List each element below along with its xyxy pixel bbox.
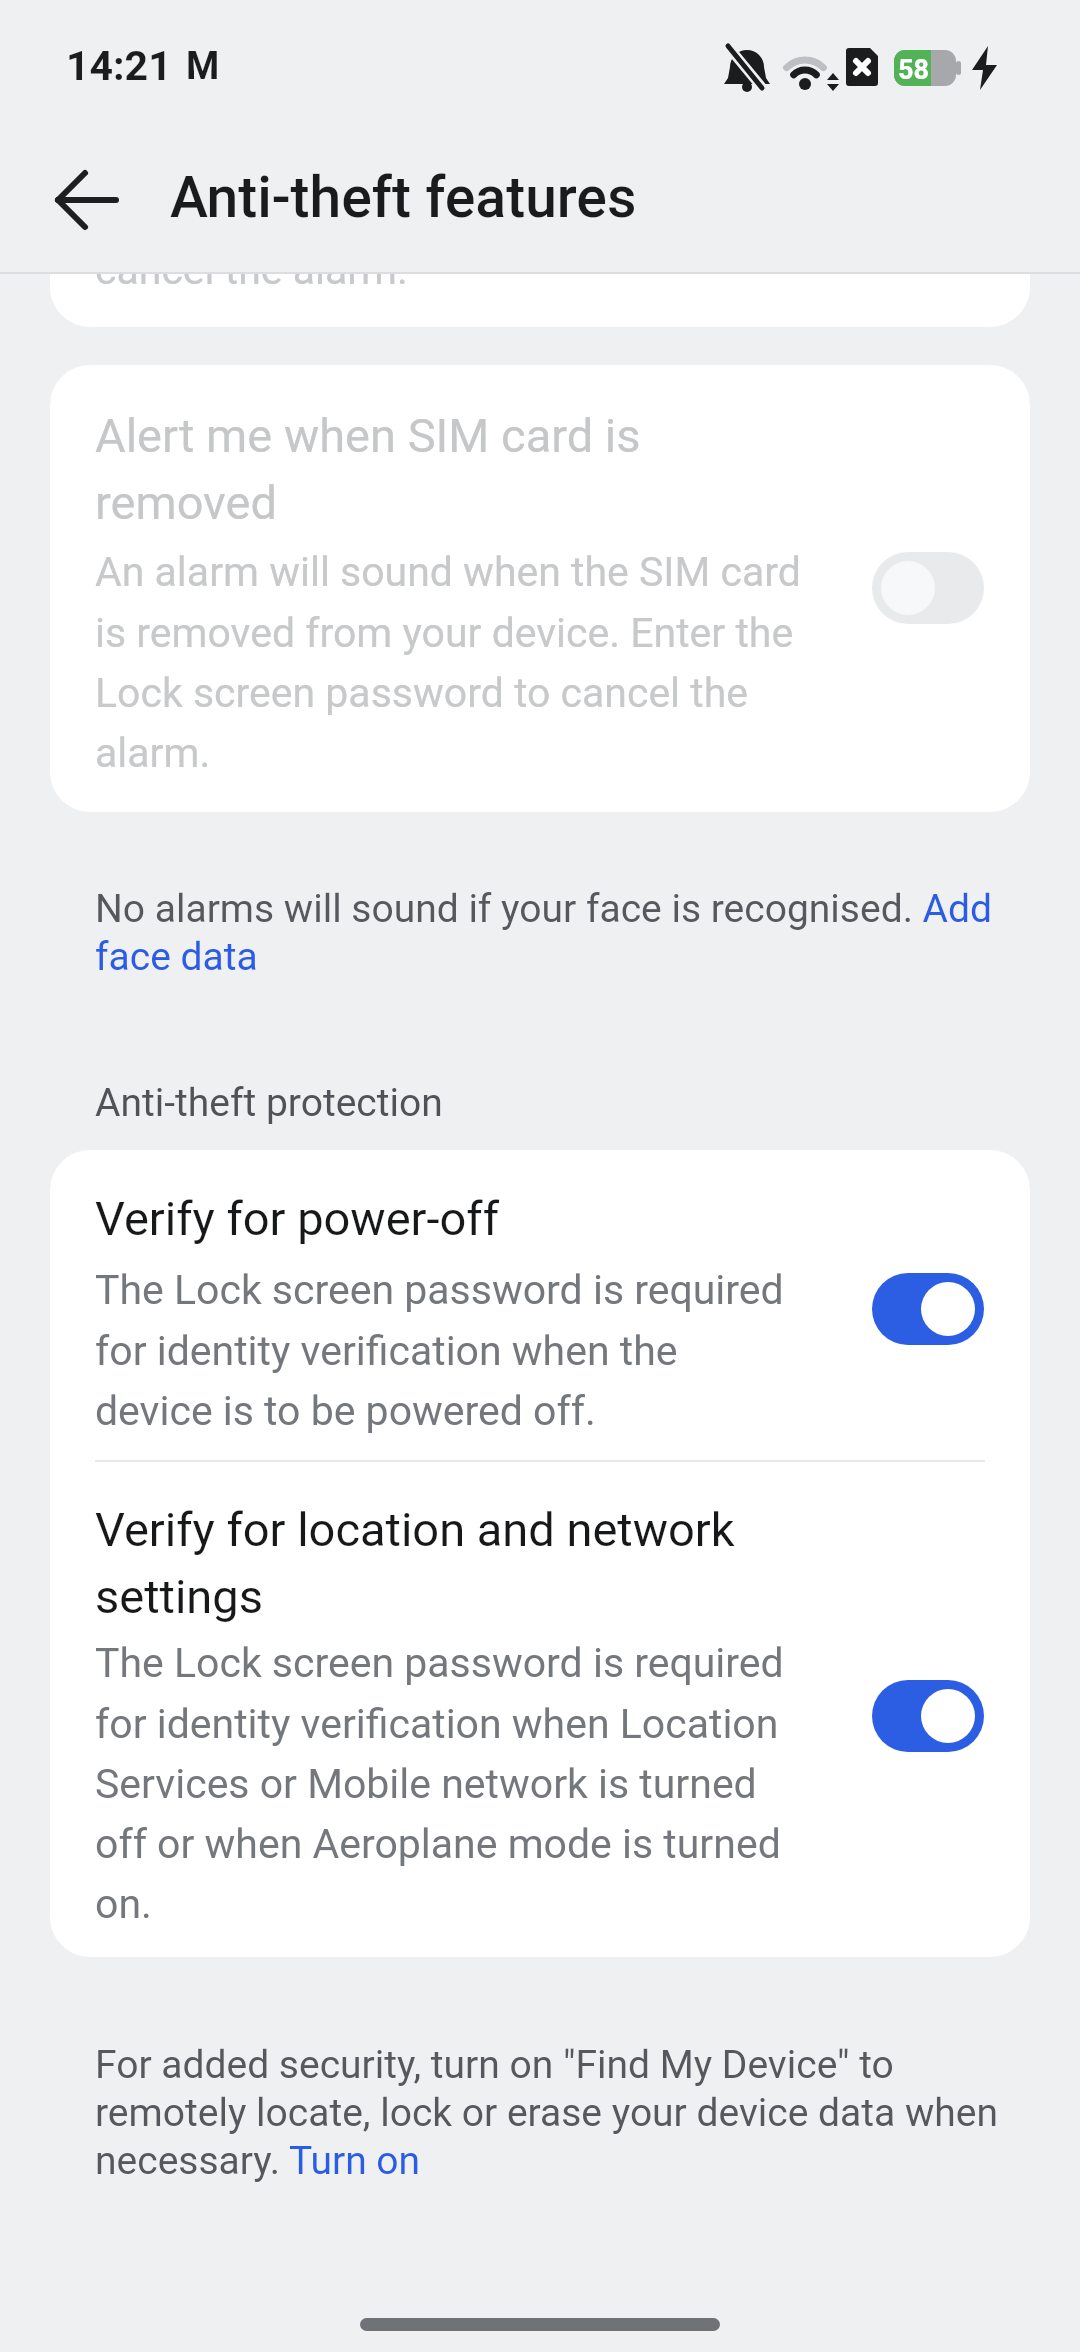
staticText: Verify for power-off <box>95 1191 499 1246</box>
button[interactable]: Verify for location and network settings <box>50 1462 1030 1957</box>
staticText: The Lock screen password is required for… <box>95 1266 784 1435</box>
staticText: Anti-theft protection <box>95 1080 443 1126</box>
button[interactable]: Verify for power-off <box>50 1150 1030 1462</box>
staticText: M <box>186 44 220 89</box>
staticText: 14:21 <box>66 42 172 90</box>
button[interactable] <box>872 1680 984 1752</box>
staticText: 58 <box>898 54 929 86</box>
staticText: Alert me when SIM card is removed <box>95 408 641 531</box>
staticText: Verify for location and network settings <box>95 1502 735 1625</box>
staticText: Anti-theft features <box>170 164 637 231</box>
staticText: The Lock screen password is required for… <box>95 1639 784 1928</box>
button[interactable] <box>872 552 984 624</box>
button[interactable]: Alert me when SIM card is removed <box>50 365 1030 812</box>
staticText: cancel the alarm. <box>95 274 408 294</box>
button[interactable]: For added security, turn on "Find My Dev… <box>95 2042 998 2184</box>
button[interactable]: No alarms will sound if your face is rec… <box>95 886 993 980</box>
staticText: An alarm will sound when the SIM card is… <box>95 548 801 777</box>
button[interactable] <box>40 168 136 232</box>
button[interactable] <box>872 1273 984 1345</box>
